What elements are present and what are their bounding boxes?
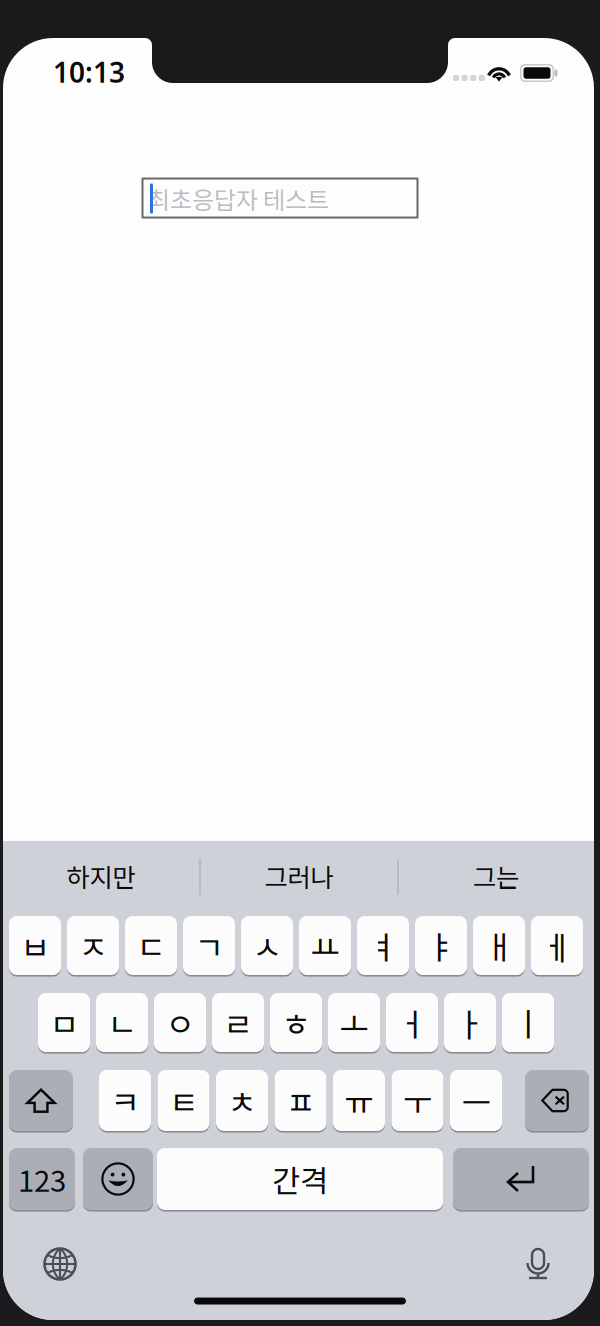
button[interactable]: ㅎ <box>270 991 322 1054</box>
button[interactable]: ㅔ <box>531 914 583 977</box>
button[interactable]: 그러나 <box>201 844 397 908</box>
staticText: ㅎ <box>281 999 310 1046</box>
button[interactable]: Shift <box>9 1068 73 1133</box>
button[interactable]: ㅋ <box>99 1068 151 1133</box>
staticText: ㅠ <box>344 1077 373 1124</box>
button[interactable]: Dictation <box>508 1236 568 1290</box>
staticText: ㅐ <box>484 922 513 969</box>
button[interactable]: ㄷ <box>125 914 177 977</box>
staticText: ㅡ <box>461 1077 490 1124</box>
staticText: 하지만 <box>66 858 135 894</box>
button[interactable]: ㅐ <box>473 914 525 977</box>
button[interactable]: ㅡ <box>450 1068 502 1133</box>
staticText: ㅍ <box>286 1077 315 1124</box>
staticText: ㅏ <box>455 999 484 1046</box>
button[interactable]: ㅛ <box>299 914 351 977</box>
staticText: ㅓ <box>397 999 426 1046</box>
staticText: ㅁ <box>49 999 78 1046</box>
staticText: ㅣ <box>513 999 542 1046</box>
staticText: ㅌ <box>169 1077 198 1124</box>
button[interactable]: ㅂ <box>9 914 61 977</box>
staticText: 그러나 <box>264 858 333 894</box>
staticText: ㅇ <box>165 999 194 1046</box>
staticText: ㅗ <box>339 999 368 1046</box>
staticText: ㄹ <box>223 999 252 1046</box>
button[interactable]: ㅊ <box>216 1068 268 1133</box>
button[interactable]: ㅑ <box>415 914 467 977</box>
staticText: 최초응답자 테스트 <box>148 181 329 216</box>
button[interactable]: ㅁ <box>38 991 90 1054</box>
button[interactable]: ㅜ <box>391 1068 443 1133</box>
button[interactable]: 그는 <box>398 844 594 908</box>
button[interactable]: ㅅ <box>241 914 293 977</box>
staticText: ㅋ <box>110 1077 139 1124</box>
button[interactable]: 하지만 <box>3 844 199 908</box>
staticText: ㅜ <box>403 1077 432 1124</box>
staticText: 간격 <box>272 1157 328 1201</box>
button[interactable]: ㄹ <box>212 991 264 1054</box>
button[interactable]: Emoji <box>83 1146 153 1212</box>
staticText: 123 <box>18 1158 66 1200</box>
staticText: ㅊ <box>227 1077 256 1124</box>
button[interactable]: Delete <box>525 1068 589 1133</box>
button[interactable]: ㅗ <box>328 991 380 1054</box>
staticText: ㄴ <box>107 999 136 1046</box>
button[interactable]: ㅇ <box>154 991 206 1054</box>
button[interactable]: ㅣ <box>502 991 554 1054</box>
staticText: 그는 <box>473 858 519 894</box>
button[interactable]: 123 <box>9 1146 75 1212</box>
button[interactable]: ㅠ <box>333 1068 385 1133</box>
staticText: ㅔ <box>542 922 571 969</box>
button[interactable]: Next keyboard <box>30 1237 90 1291</box>
staticText: ㄱ <box>194 922 223 969</box>
button[interactable]: 최초응답자 테스트 <box>141 177 418 218</box>
staticText: ㄷ <box>136 922 165 969</box>
staticText: ㅈ <box>78 922 107 969</box>
button[interactable]: ㅍ <box>274 1068 326 1133</box>
staticText: ㅅ <box>252 922 281 969</box>
button[interactable]: Return <box>453 1146 589 1212</box>
button[interactable]: ㅏ <box>444 991 496 1054</box>
staticText: ㅂ <box>20 922 49 969</box>
staticText: ㅕ <box>368 922 397 969</box>
staticText: ㅛ <box>310 922 339 969</box>
button[interactable]: ㅌ <box>157 1068 209 1133</box>
button[interactable]: ㅕ <box>357 914 409 977</box>
staticText: 10:13 <box>53 53 125 91</box>
button[interactable]: 간격 <box>157 1146 443 1212</box>
button[interactable]: ㅓ <box>386 991 438 1054</box>
staticText: ㅑ <box>426 922 455 969</box>
button[interactable]: ㄴ <box>96 991 148 1054</box>
button[interactable]: ㅈ <box>67 914 119 977</box>
button[interactable]: ㄱ <box>183 914 235 977</box>
